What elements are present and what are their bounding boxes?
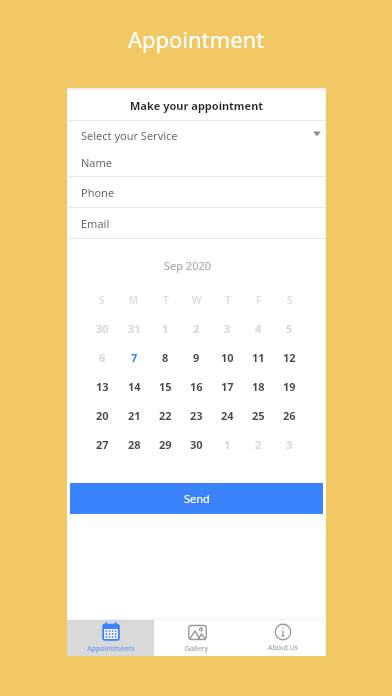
staticText: 14 [128,379,141,394]
button[interactable]: 30 [86,314,118,343]
staticText: Make your appointment [130,98,264,113]
button[interactable]: 16 [181,372,212,401]
button[interactable]: 30 [181,430,212,459]
button[interactable]: 1 [212,430,243,459]
staticText: Phone [81,185,115,200]
staticText: M [129,293,139,307]
staticText: 24 [221,408,234,423]
button[interactable]: 15 [150,372,181,401]
staticText: 10 [221,350,234,365]
button[interactable]: 21 [118,401,150,430]
staticText: Select your Service [81,128,178,143]
staticText: 15 [159,379,172,394]
button[interactable]: 27 [86,430,118,459]
button[interactable]: 29 [150,430,181,459]
button[interactable]: Phone [67,177,326,207]
staticText: 11 [252,350,265,365]
button[interactable]: 3 [274,430,305,459]
button[interactable]: 4 [243,314,274,343]
button[interactable]: About Us [240,620,326,656]
button[interactable]: Send [70,483,323,514]
staticText: 12 [283,350,296,365]
staticText: 23 [190,408,203,423]
button[interactable]: 25 [243,401,274,430]
staticText: 2 [255,437,262,452]
staticText: 28 [128,437,141,452]
staticText: 16 [190,379,203,394]
staticText: 3 [286,437,293,452]
button[interactable]: 22 [150,401,181,430]
button[interactable]: 17 [212,372,243,401]
staticText: Appointments [87,644,135,654]
staticText: F [256,293,262,307]
staticText: 4 [255,321,262,336]
staticText: Sep 2020 [58,258,317,273]
staticText: S [99,293,105,307]
button[interactable]: 28 [118,430,150,459]
button[interactable]: 9 [181,343,212,372]
staticText: 3 [224,321,231,336]
button[interactable]: 18 [243,372,274,401]
button[interactable]: 11 [243,343,274,372]
staticText: 2 [193,321,200,336]
staticText: 1 [162,321,169,336]
button[interactable]: Gallery [154,620,240,656]
staticText: 26 [283,408,296,423]
button[interactable]: 13 [86,372,118,401]
button[interactable]: 6 [86,343,118,372]
staticText: 18 [252,379,265,394]
staticText: 5 [286,321,293,336]
staticText: 29 [159,437,172,452]
staticText: 30 [96,321,109,336]
staticText: 13 [96,379,109,394]
staticText: Gallery [185,644,209,654]
button[interactable]: Select your Service [67,121,326,149]
staticText: 6 [99,350,106,365]
staticText: 27 [96,437,109,452]
button[interactable]: 31 [118,314,150,343]
staticText: T [163,293,169,307]
staticText: 17 [221,379,234,394]
button[interactable]: 3 [212,314,243,343]
button[interactable]: 23 [181,401,212,430]
staticText: 21 [128,408,141,423]
staticText: 19 [283,379,296,394]
button[interactable]: 8 [150,343,181,372]
button[interactable]: 20 [86,401,118,430]
other: Open service dropdown [313,128,322,137]
button[interactable]: Name [67,149,326,176]
button[interactable]: 12 [274,343,305,372]
staticText: W [192,293,202,307]
staticText: 30 [190,437,203,452]
staticText: 20 [96,408,109,423]
button[interactable]: 10 [212,343,243,372]
staticText: Appointment [0,24,392,54]
staticText: 22 [159,408,172,423]
staticText: 7 [131,350,138,365]
staticText: Name [81,155,113,170]
staticText: S [287,293,293,307]
button[interactable]: 19 [274,372,305,401]
staticText: Email [81,216,110,231]
button[interactable]: 14 [118,372,150,401]
button[interactable]: 5 [274,314,305,343]
button[interactable]: Email [67,208,326,238]
staticText: 25 [252,408,265,423]
button[interactable]: 7 [118,343,150,372]
staticText: 31 [128,321,141,336]
button[interactable]: 1 [150,314,181,343]
staticText: T [225,293,231,307]
staticText: About Us [268,643,299,653]
button[interactable]: 26 [274,401,305,430]
button[interactable]: 2 [181,314,212,343]
button[interactable]: 2 [243,430,274,459]
button[interactable]: 24 [212,401,243,430]
staticText: Send [184,491,210,506]
button[interactable]: Appointments [67,620,154,656]
staticText: 9 [193,350,200,365]
staticText: 1 [224,437,231,452]
staticText: 8 [162,350,169,365]
